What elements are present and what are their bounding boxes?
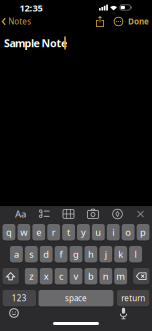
button[interactable] — [112, 209, 122, 219]
staticText: Aa — [15, 208, 26, 220]
button[interactable]: t — [62, 224, 75, 240]
button[interactable] — [39, 209, 50, 219]
button[interactable] — [119, 307, 127, 319]
staticText: t — [67, 226, 70, 238]
button[interactable]: d — [40, 246, 53, 262]
button[interactable]: x — [40, 268, 53, 284]
staticText: s — [29, 248, 33, 260]
button[interactable]: j — [99, 246, 112, 262]
staticText: m — [116, 270, 125, 282]
staticText: 123 — [12, 293, 27, 303]
staticText: a — [14, 248, 19, 260]
button[interactable] — [113, 16, 123, 26]
button[interactable]: Notes — [0, 13, 33, 29]
button[interactable]: Aa — [13, 208, 27, 220]
staticText: q — [6, 226, 12, 238]
button[interactable]: n — [99, 268, 112, 284]
staticText: w — [20, 226, 27, 238]
button[interactable]: q — [2, 224, 15, 240]
staticText: e — [36, 226, 41, 238]
staticText: l — [135, 248, 137, 260]
staticText: g — [73, 248, 79, 260]
button[interactable]: g — [69, 246, 82, 262]
button[interactable]: k — [114, 246, 127, 262]
staticText: i — [112, 226, 114, 238]
staticText: y — [81, 226, 86, 238]
button[interactable]: return — [117, 290, 149, 306]
staticText: u — [95, 226, 101, 238]
staticText: o — [125, 226, 131, 238]
button[interactable] — [9, 308, 19, 318]
button[interactable]: b — [84, 268, 97, 284]
button[interactable]: y — [77, 224, 90, 240]
button[interactable]: h — [84, 246, 97, 262]
button[interactable]: s — [25, 246, 38, 262]
staticText: n — [103, 270, 109, 282]
staticText: c — [59, 270, 63, 282]
staticText: p — [140, 226, 146, 238]
button[interactable]: l — [129, 246, 142, 262]
staticText: Done — [128, 16, 149, 27]
staticText: d — [43, 248, 49, 260]
button[interactable] — [87, 209, 98, 219]
button[interactable] — [137, 210, 144, 217]
button[interactable]: m — [114, 268, 127, 284]
button[interactable]: w — [17, 224, 30, 240]
staticText: Sample Note — [4, 36, 67, 50]
button[interactable]: p — [137, 224, 149, 240]
staticText: return — [121, 293, 145, 303]
staticText: r — [52, 226, 56, 238]
button[interactable]: c — [55, 268, 67, 284]
button[interactable]: v — [69, 268, 82, 284]
staticText: v — [73, 270, 78, 282]
staticText: space — [65, 293, 87, 303]
button[interactable] — [96, 16, 104, 27]
button[interactable] — [63, 209, 74, 218]
button[interactable]: 123 — [2, 290, 36, 306]
button[interactable]: e — [32, 224, 45, 240]
button[interactable]: z — [25, 268, 38, 284]
staticText: f — [60, 248, 63, 260]
staticText: k — [118, 248, 123, 260]
staticText: z — [29, 270, 33, 282]
button[interactable]: f — [55, 246, 67, 262]
button[interactable]: Done — [122, 14, 152, 28]
button[interactable]: o — [122, 224, 135, 240]
button[interactable]: i — [107, 224, 120, 240]
button[interactable] — [2, 268, 19, 284]
staticText: b — [88, 270, 94, 282]
button[interactable] — [133, 268, 149, 284]
staticText: h — [88, 248, 94, 260]
staticText: j — [105, 248, 107, 260]
button[interactable]: space — [38, 290, 113, 306]
staticText: Notes — [8, 16, 31, 27]
staticText: x — [44, 270, 49, 282]
button[interactable]: u — [92, 224, 105, 240]
staticText: 12:35 — [19, 2, 42, 14]
button[interactable]: a — [10, 246, 23, 262]
button[interactable]: r — [47, 224, 60, 240]
